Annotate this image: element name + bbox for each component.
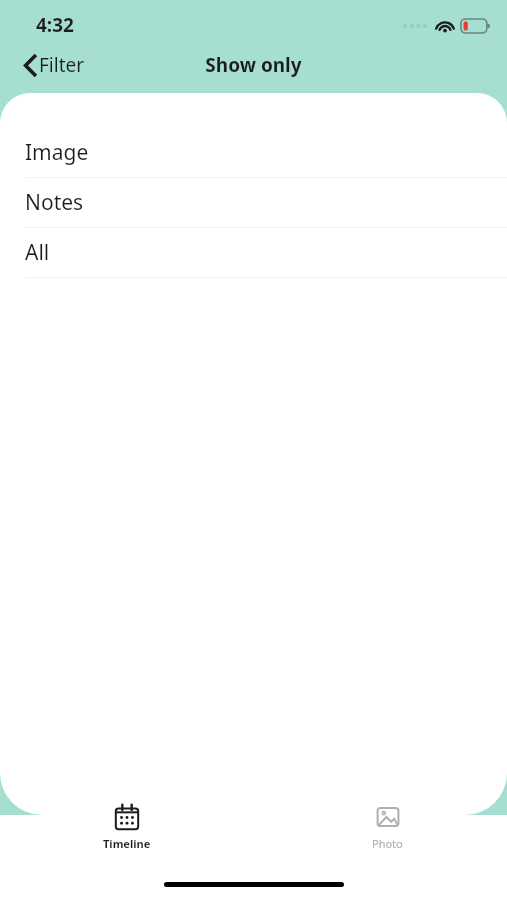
staticText: All bbox=[25, 238, 50, 267]
staticText: Timeline bbox=[103, 836, 151, 851]
other: Timeline bbox=[114, 804, 140, 830]
staticText: Show only bbox=[205, 52, 302, 78]
button[interactable]: Timeline bbox=[87, 800, 167, 855]
button[interactable]: Filter bbox=[20, 48, 89, 82]
staticText: Image bbox=[25, 138, 89, 167]
button[interactable]: Notes bbox=[0, 178, 507, 228]
staticText: 4:32 bbox=[36, 12, 74, 38]
button[interactable]: All bbox=[0, 228, 507, 278]
staticText: Photo bbox=[372, 836, 403, 851]
button[interactable]: Photo bbox=[356, 800, 419, 855]
staticText: Filter bbox=[39, 52, 85, 78]
button[interactable]: Image bbox=[0, 128, 507, 178]
other: Photo bbox=[375, 804, 401, 830]
staticText: Notes bbox=[25, 188, 84, 217]
